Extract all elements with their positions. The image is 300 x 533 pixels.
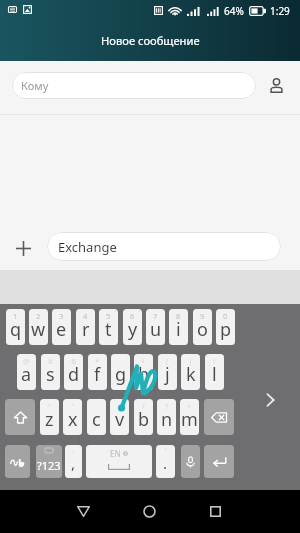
button[interactable]: Home bbox=[128, 490, 171, 533]
staticText: ! bbox=[213, 356, 216, 366]
button[interactable]: + bbox=[134, 354, 153, 390]
staticText: - bbox=[72, 446, 75, 456]
staticText: d bbox=[68, 362, 80, 387]
button[interactable]: ; bbox=[110, 399, 129, 435]
button[interactable]: Recent apps bbox=[194, 490, 237, 533]
staticText: i bbox=[176, 317, 181, 342]
button[interactable]: ? bbox=[157, 399, 176, 435]
staticText: 5 bbox=[106, 311, 111, 321]
staticText: u bbox=[150, 317, 162, 342]
button[interactable]: Space bbox=[86, 445, 152, 478]
button[interactable]: Choose contact bbox=[262, 71, 290, 99]
button[interactable]: * bbox=[88, 354, 107, 390]
staticText: m bbox=[181, 407, 198, 432]
button[interactable]: 8 bbox=[169, 309, 188, 345]
staticText: - bbox=[119, 356, 122, 366]
staticText: b bbox=[138, 407, 150, 432]
staticText: * bbox=[95, 356, 100, 366]
staticText: EN bbox=[110, 448, 121, 459]
staticText: h bbox=[138, 362, 150, 387]
staticText: s bbox=[46, 362, 55, 387]
staticText: : bbox=[95, 401, 98, 411]
staticText: x bbox=[68, 407, 78, 432]
staticText: n bbox=[161, 407, 173, 432]
button[interactable]: & bbox=[64, 354, 83, 390]
staticText: 3 bbox=[59, 311, 64, 321]
button[interactable]: Backspace bbox=[204, 399, 234, 435]
staticText: 2 bbox=[36, 311, 41, 321]
staticText: 6 bbox=[130, 311, 135, 321]
button[interactable]: 4 bbox=[76, 309, 95, 345]
staticText: k bbox=[186, 362, 196, 387]
button[interactable]: Symbols bbox=[36, 445, 62, 478]
staticText: t bbox=[105, 317, 112, 342]
staticText: 7 bbox=[153, 311, 158, 321]
staticText: g bbox=[115, 362, 127, 387]
staticText: # bbox=[48, 356, 53, 366]
staticText: Новое сообщение bbox=[101, 33, 200, 48]
staticText: f bbox=[94, 362, 101, 387]
staticText: v bbox=[115, 407, 125, 432]
staticText: z bbox=[45, 407, 54, 432]
button[interactable]: ' bbox=[156, 445, 175, 478]
button[interactable]: ' bbox=[63, 399, 82, 435]
staticText: , bbox=[71, 453, 76, 473]
button[interactable]: Enter bbox=[204, 445, 234, 478]
staticText: ; bbox=[118, 401, 121, 411]
button[interactable]: Back bbox=[62, 490, 105, 533]
button[interactable]: ! bbox=[205, 354, 224, 390]
button[interactable]: @ bbox=[17, 354, 36, 390]
staticText: w bbox=[31, 317, 46, 342]
button[interactable]: 3 bbox=[52, 309, 71, 345]
button[interactable]: / bbox=[134, 399, 153, 435]
staticText: 9 bbox=[200, 311, 205, 321]
button[interactable]: ) bbox=[181, 354, 200, 390]
staticText: / bbox=[142, 401, 145, 411]
staticText: ) bbox=[189, 356, 192, 366]
button[interactable]: 9 bbox=[193, 309, 212, 345]
staticText: @ bbox=[23, 356, 30, 366]
staticText: 0 bbox=[223, 311, 228, 321]
staticText: ? bbox=[165, 401, 169, 411]
button[interactable]: 0 bbox=[216, 309, 235, 345]
button[interactable]: Handwriting input bbox=[5, 445, 30, 478]
staticText: 4 bbox=[83, 311, 88, 321]
staticText: ?123 bbox=[37, 458, 61, 473]
staticText: 1 bbox=[13, 311, 18, 321]
button[interactable]: Кому bbox=[12, 72, 256, 99]
staticText: r bbox=[82, 317, 90, 342]
staticText: 8 bbox=[176, 311, 181, 321]
button[interactable]: + bbox=[180, 399, 199, 435]
button[interactable]: " bbox=[40, 399, 59, 435]
button[interactable]: 1 bbox=[6, 309, 25, 345]
button[interactable]: # bbox=[41, 354, 60, 390]
staticText: " bbox=[48, 401, 52, 411]
button[interactable]: 5 bbox=[99, 309, 118, 345]
staticText: y bbox=[128, 317, 138, 342]
staticText: ' bbox=[165, 446, 167, 456]
staticText: l bbox=[212, 362, 217, 387]
staticText: ( bbox=[166, 356, 169, 366]
staticText: 1:29 bbox=[270, 4, 290, 18]
button[interactable]: Voice input bbox=[181, 445, 200, 478]
button[interactable]: : bbox=[87, 399, 106, 435]
button[interactable]: ( bbox=[158, 354, 177, 390]
button[interactable]: - bbox=[65, 445, 82, 478]
button[interactable]: Add attachment bbox=[12, 237, 34, 259]
button[interactable]: 7 bbox=[146, 309, 165, 345]
staticText: Кому bbox=[21, 78, 49, 93]
staticText: + bbox=[141, 356, 146, 366]
button[interactable]: Expand keyboard bbox=[256, 386, 284, 414]
staticText: c bbox=[92, 407, 101, 432]
button[interactable]: - bbox=[111, 354, 130, 390]
staticText: ' bbox=[72, 401, 74, 411]
button[interactable]: Exchange bbox=[47, 232, 281, 261]
button[interactable]: 2 bbox=[29, 309, 48, 345]
staticText: o bbox=[197, 317, 208, 342]
button[interactable]: Shift bbox=[5, 399, 35, 435]
staticText: e bbox=[56, 317, 67, 342]
staticText: Exchange bbox=[58, 238, 117, 256]
staticText: 64% bbox=[224, 4, 244, 18]
staticText: . bbox=[163, 453, 168, 473]
button[interactable]: 6 bbox=[123, 309, 142, 345]
